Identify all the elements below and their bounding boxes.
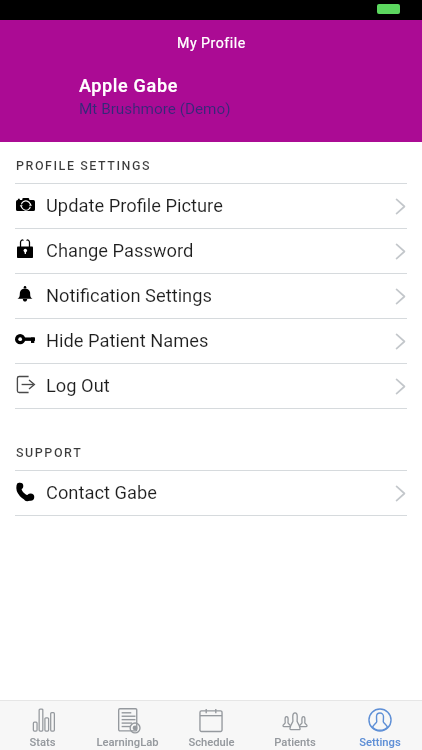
staticText: PROFILE SETTINGS bbox=[16, 158, 152, 173]
button[interactable]: Schedule bbox=[169, 701, 253, 750]
button[interactable]: Patients bbox=[253, 701, 337, 750]
staticText: SUPPORT bbox=[16, 445, 83, 460]
staticText: Log Out bbox=[46, 375, 110, 396]
button[interactable]: Update Profile Picture bbox=[0, 184, 422, 228]
staticText: Settings bbox=[359, 736, 401, 749]
staticText: Contact Gabe bbox=[46, 482, 157, 503]
staticText: Mt Brushmore (Demo) bbox=[79, 100, 231, 118]
staticText: Change Password bbox=[46, 240, 194, 261]
button[interactable]: Stats bbox=[0, 701, 84, 750]
button[interactable]: Settings bbox=[338, 701, 422, 750]
staticText: LearningLab bbox=[96, 736, 159, 749]
staticText: Stats bbox=[29, 736, 56, 749]
button[interactable]: Hide Patient Names bbox=[0, 319, 422, 363]
staticText: Apple Gabe bbox=[79, 75, 179, 96]
button[interactable]: Log Out bbox=[0, 364, 422, 408]
staticText: Schedule bbox=[188, 736, 235, 749]
button[interactable]: Contact Gabe bbox=[0, 471, 422, 515]
staticText: Hide Patient Names bbox=[46, 330, 209, 351]
staticText: Patients bbox=[274, 736, 316, 749]
button[interactable]: Notification Settings bbox=[0, 274, 422, 318]
staticText: Update Profile Picture bbox=[46, 195, 223, 216]
staticText: Notification Settings bbox=[46, 285, 212, 306]
button[interactable]: Change Password bbox=[0, 229, 422, 273]
button[interactable]: LearningLab bbox=[85, 701, 169, 750]
staticText: My Profile bbox=[177, 35, 246, 52]
